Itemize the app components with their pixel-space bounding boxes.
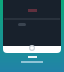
- button[interactable]: [18, 23, 26, 26]
